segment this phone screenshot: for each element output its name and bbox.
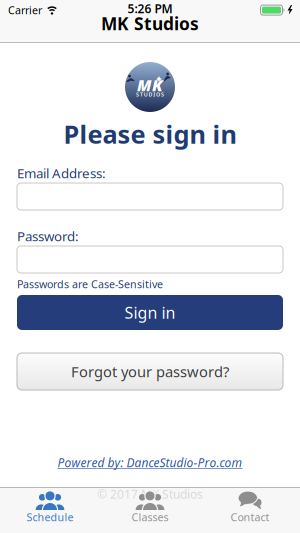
staticText: MK — [137, 74, 163, 96]
staticText: 5:26 PM — [127, 0, 172, 16]
button[interactable]: Email Address — [17, 183, 283, 210]
button[interactable]: Contact — [200, 491, 300, 522]
staticText: Classes — [131, 510, 168, 524]
button[interactable]: Sign in — [17, 295, 283, 330]
button[interactable]: Forgot your password? — [17, 353, 283, 390]
staticText: Contact — [230, 510, 269, 524]
staticText: Please sign in — [63, 117, 236, 151]
staticText: Carrier — [8, 3, 42, 17]
button[interactable]: Password — [17, 246, 283, 273]
staticText: Schedule — [26, 510, 73, 524]
staticText: Powered by: DanceStudio-Pro.com — [57, 454, 242, 470]
staticText: © 2017 MK Studios — [97, 486, 203, 502]
staticText: STUDIOS — [136, 91, 164, 98]
button[interactable]: Schedule — [0, 491, 100, 522]
staticText: Email Address: — [17, 164, 106, 182]
staticText: Forgot your password? — [71, 362, 229, 381]
staticText: MK Studios — [101, 12, 199, 35]
button[interactable]: Classes — [100, 491, 200, 522]
staticText: Sign in — [124, 302, 175, 323]
staticText: Password: — [17, 227, 79, 245]
staticText: Passwords are Case-Sensitive — [17, 277, 163, 291]
button[interactable]: Powered by: DanceStudio-Pro.com — [57, 456, 242, 469]
